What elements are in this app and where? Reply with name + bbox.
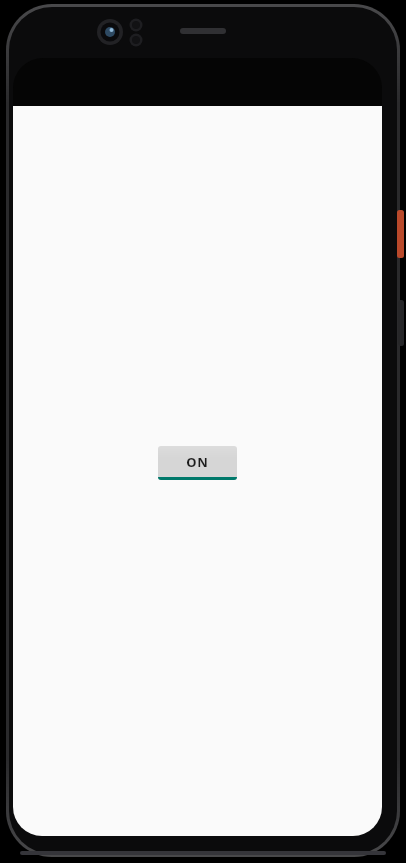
button[interactable]: Toggle ON — [158, 446, 237, 480]
staticText: ON — [186, 453, 209, 471]
